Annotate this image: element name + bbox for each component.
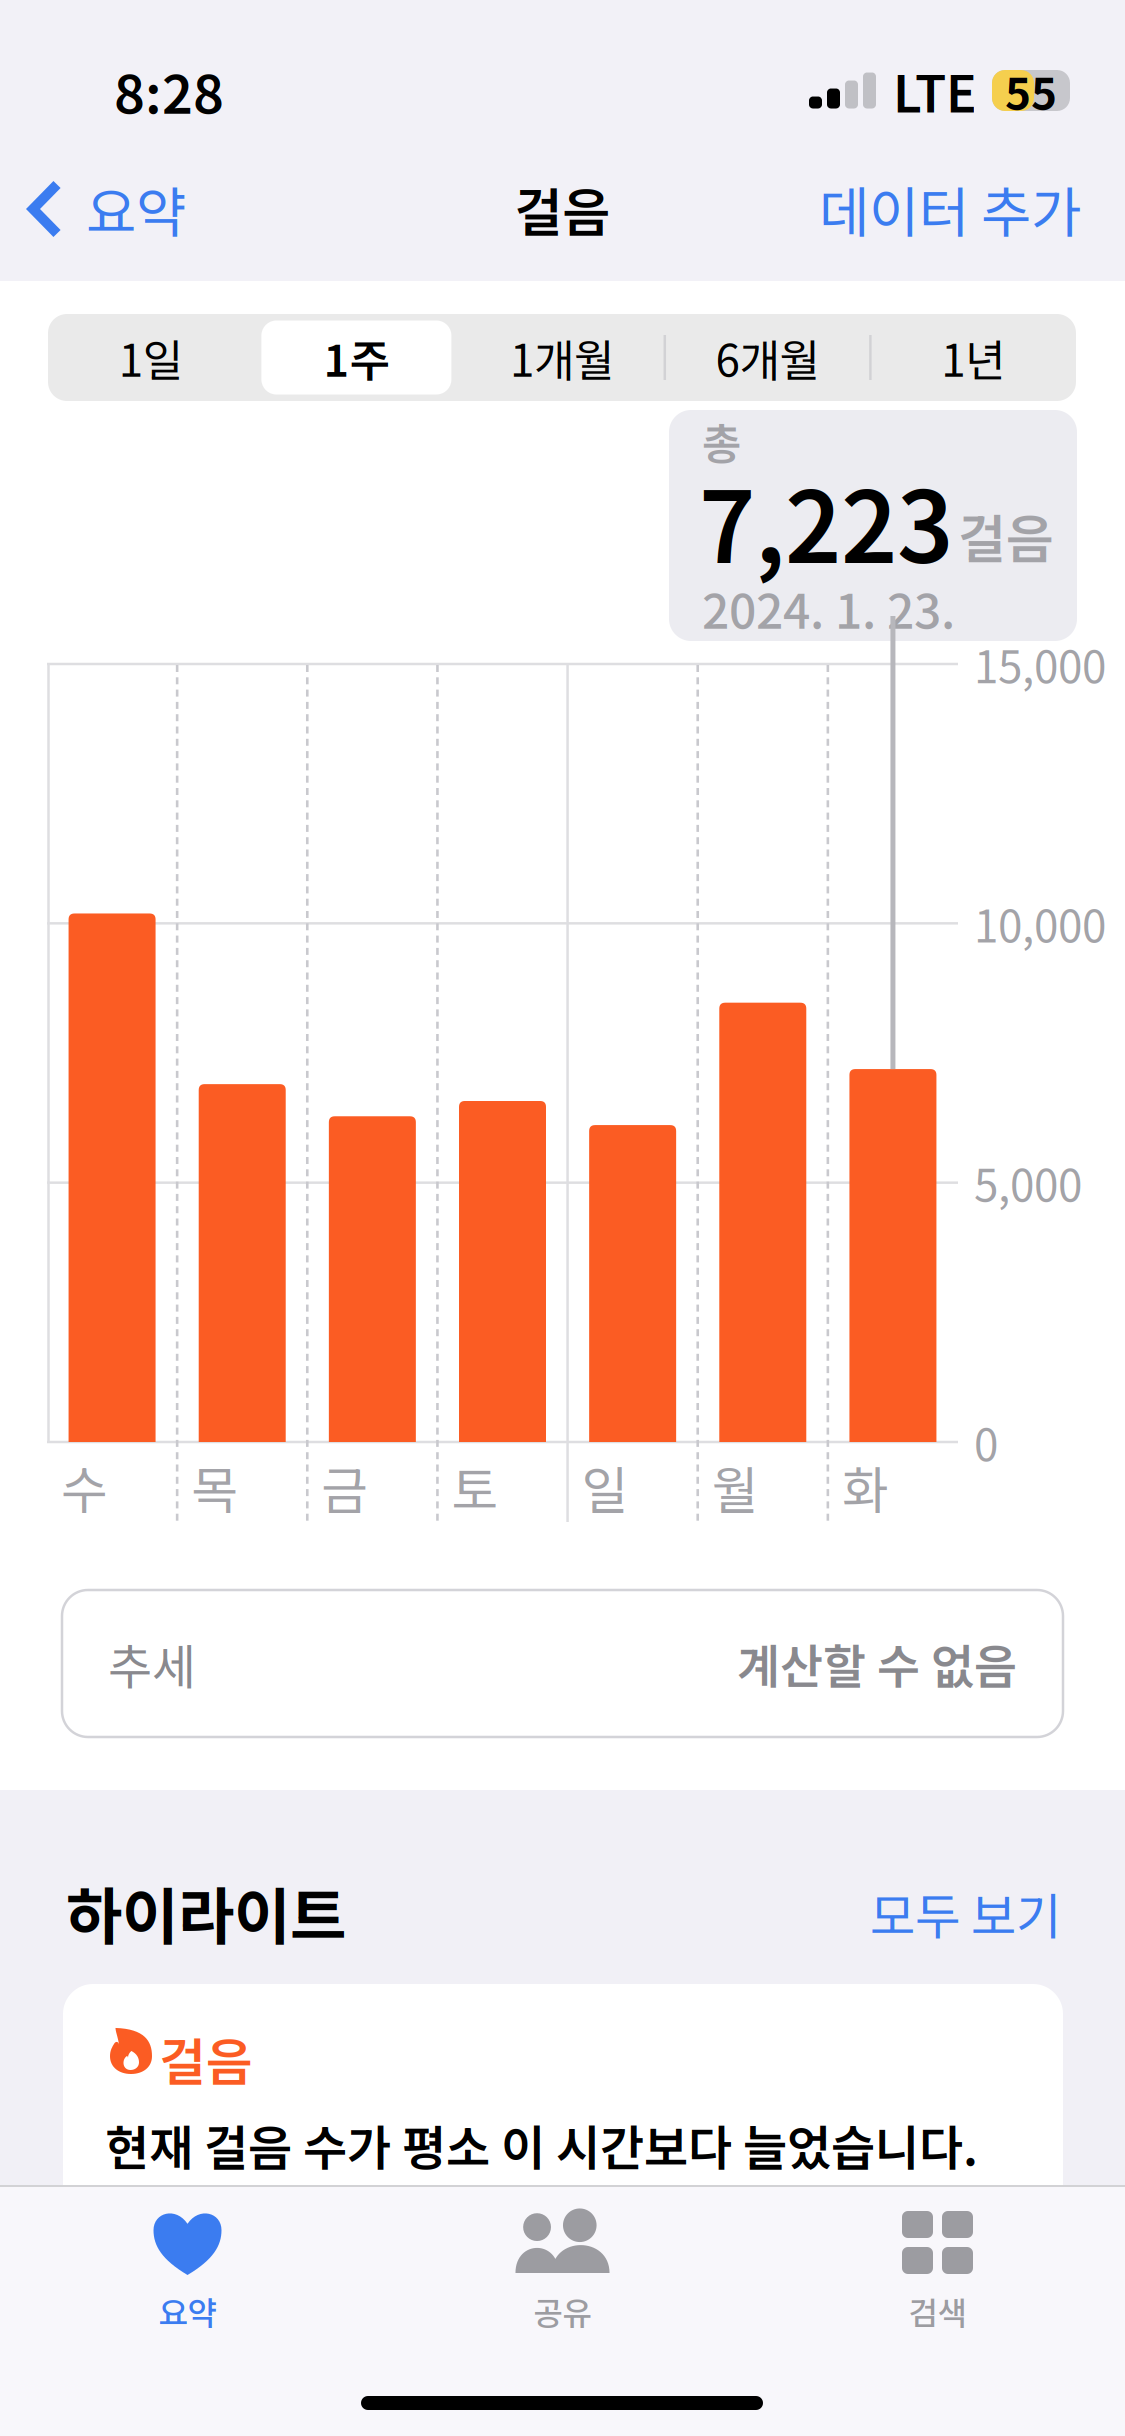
staticText: 걸음 [159, 2022, 253, 2095]
staticText: 수 [61, 1450, 108, 1524]
button[interactable]: 1년 [870, 314, 1076, 401]
button[interactable]: 추세 [62, 1590, 1063, 1737]
button[interactable]: 6개월 [665, 314, 870, 401]
button[interactable]: 데이터 추가 [819, 137, 1125, 281]
staticText: 걸음 [514, 171, 610, 247]
staticText: 10,000 [974, 891, 1106, 955]
staticText: 1일 [119, 326, 183, 389]
staticText: 요약 [86, 169, 186, 249]
button[interactable]: 모두 보기 [861, 1883, 1061, 1943]
staticText: 15,000 [974, 632, 1106, 696]
staticText: 1년 [941, 326, 1005, 389]
button[interactable]: 1일 [48, 314, 254, 401]
staticText: 8:28 [114, 52, 224, 129]
staticText: 화 [842, 1450, 889, 1524]
staticText: 5,000 [974, 1151, 1082, 1214]
staticText: 일 [582, 1450, 629, 1524]
staticText: 모두 보기 [870, 1877, 1061, 1949]
staticText: LTE [893, 54, 977, 127]
staticText: 데이터 추가 [819, 169, 1081, 249]
button[interactable]: 요약 [0, 2211, 375, 2346]
staticText: 6개월 [716, 326, 820, 389]
staticText: 1주 [323, 326, 389, 389]
staticText: 공유 [533, 2288, 591, 2334]
staticText: 1개월 [510, 326, 614, 389]
staticText: 검색 [908, 2288, 966, 2334]
staticText: 계산할 수 없음 [737, 1630, 1017, 1697]
staticText: 목 [191, 1450, 238, 1524]
staticText: 걸음 [958, 498, 1054, 573]
button[interactable]: 1개월 [459, 314, 665, 401]
staticText: 2024. 1. 23. [702, 573, 955, 642]
button[interactable]: 1주 [254, 314, 459, 401]
staticText: 월 [712, 1450, 759, 1524]
staticText: 금 [321, 1450, 368, 1524]
staticText: 토 [451, 1450, 498, 1524]
staticText: 하이라이트 [66, 1868, 346, 1956]
staticText: 추세 [108, 1629, 196, 1698]
button[interactable]: 걸음 [63, 1984, 1063, 2284]
button[interactable]: 공유 [375, 2211, 750, 2346]
staticText: 총 [702, 410, 741, 472]
staticText: 7,223 [699, 450, 953, 591]
staticText: 55 [1005, 59, 1057, 122]
staticText: 0 [974, 1410, 998, 1474]
button[interactable]: 검색 [750, 2211, 1125, 2346]
button[interactable]: 요약 [0, 137, 186, 281]
staticText: 요약 [158, 2288, 216, 2334]
staticText: 현재 걸음 수가 평소 이 시간보다 늘었습니다. [105, 2110, 978, 2179]
